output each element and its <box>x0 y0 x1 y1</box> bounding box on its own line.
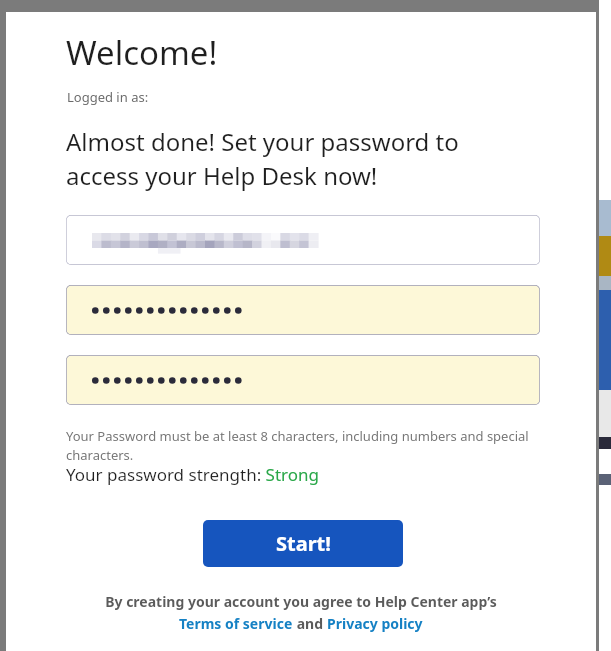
staticText: Privacy policy <box>327 614 423 633</box>
staticText: Logged in as: <box>67 88 149 106</box>
staticText: Terms of service <box>179 614 293 633</box>
staticText: Almost done! Set your password to access… <box>66 125 459 192</box>
staticText: and <box>293 614 327 633</box>
staticText: Start! <box>276 530 331 557</box>
staticText: By creating your account you agree to He… <box>105 592 497 611</box>
button[interactable] <box>66 215 540 265</box>
button[interactable]: Start! <box>203 520 403 567</box>
staticText: Your password strength: Strong <box>66 463 320 486</box>
button[interactable]: Password <box>66 355 540 405</box>
button[interactable]: Privacy policy <box>327 614 423 633</box>
button[interactable]: Terms of service <box>179 614 293 633</box>
staticText: Your Password must be at least 8 charact… <box>66 427 529 464</box>
staticText: Welcome! <box>66 30 218 75</box>
button[interactable]: Password <box>66 285 540 335</box>
